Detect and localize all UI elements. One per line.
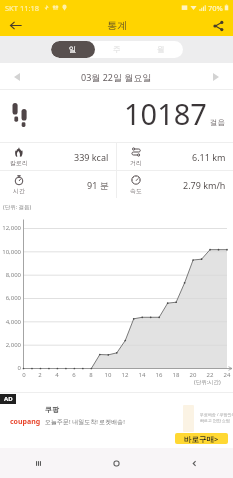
staticText: 2 [34, 371, 46, 379]
staticText: AD [4, 395, 13, 403]
staticText: 4,000 [0, 318, 21, 326]
button[interactable]: 시간 [0, 171, 116, 198]
staticText: (단위:시간) [194, 378, 221, 386]
staticText: 339 kcal [74, 151, 109, 163]
staticText: 월 [157, 45, 165, 54]
staticText: 10,000 [0, 248, 21, 256]
staticText: coupang [10, 417, 41, 427]
button[interactable]: Home [77, 448, 155, 478]
button[interactable]: 주 [95, 41, 139, 58]
staticText: SKT 11:18 [5, 3, 40, 13]
staticText: 시간 [13, 187, 25, 195]
staticText: 03월 22일 월요일 [81, 71, 152, 83]
staticText: 바로구매> [184, 434, 219, 444]
button[interactable]: Share [204, 15, 233, 36]
button[interactable]: 일 [51, 41, 95, 58]
button[interactable]: Back [155, 448, 233, 478]
button[interactable]: 월 [139, 41, 183, 58]
staticText: 10 [102, 371, 114, 379]
staticText: 쿠팡 [45, 405, 59, 414]
staticText: 6,000 [0, 294, 21, 302]
staticText: 0 [18, 371, 30, 379]
button[interactable]: 거리 [117, 143, 233, 170]
staticText: 통계 [107, 19, 127, 32]
staticText: 12 [119, 371, 131, 379]
staticText: 6.11 km [192, 151, 226, 163]
staticText: 20 [187, 371, 199, 379]
button[interactable]: 바로구매> [175, 433, 228, 444]
staticText: 거리 [130, 159, 142, 167]
staticText: 12,000 [0, 224, 21, 232]
staticText: 8 [85, 371, 97, 379]
staticText: 8,000 [0, 271, 21, 279]
staticText: 오늘주문! 내일도착! 로켓배송! [45, 418, 125, 426]
staticText: 2,000 [0, 341, 21, 349]
staticText: 무료배송 / 쿠팡만의 빠르고 편한 쇼핑 [200, 412, 233, 423]
button[interactable]: Recent apps [0, 448, 77, 478]
staticText: 10187 [124, 94, 207, 133]
staticText: 속도 [130, 187, 142, 195]
staticText: 2.79 km/h [183, 179, 226, 191]
staticText: (단위: 걸음) [3, 203, 32, 211]
button[interactable]: Next day [199, 63, 233, 90]
staticText: 일 [69, 45, 77, 54]
button[interactable]: 칼로리 [0, 143, 116, 170]
staticText: 14 [136, 371, 148, 379]
staticText: 6 [68, 371, 80, 379]
staticText: 24 [221, 371, 233, 379]
staticText: 4 [51, 371, 63, 379]
button[interactable]: 속도 [117, 171, 233, 198]
staticText: 22 [204, 371, 216, 379]
staticText: 18 [170, 371, 182, 379]
staticText: 70% [208, 3, 223, 13]
staticText: 걸음 [210, 118, 225, 127]
staticText: 91 분 [87, 179, 109, 191]
staticText: 주 [113, 45, 121, 54]
button[interactable]: Back [0, 15, 31, 36]
staticText: 칼로리 [10, 159, 28, 167]
staticText: 0 [0, 364, 21, 372]
staticText: 16 [153, 371, 165, 379]
button[interactable]: Previous day [0, 63, 34, 90]
